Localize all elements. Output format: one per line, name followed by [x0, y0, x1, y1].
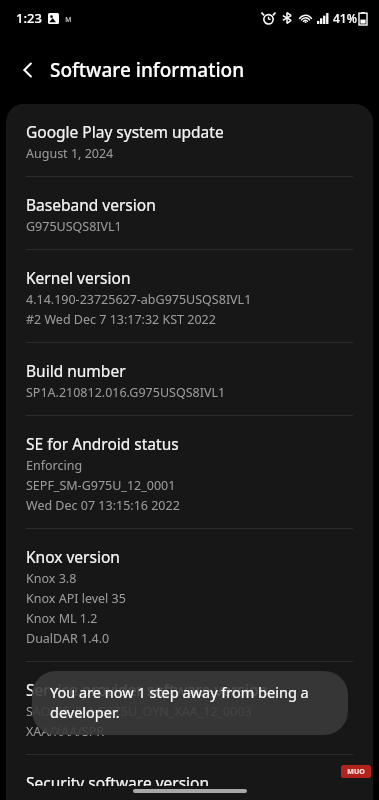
button[interactable]: Service provider software version [6, 662, 373, 755]
staticText: Baseband version [26, 194, 156, 215]
staticText: 4.14.190-23725627-abG975USQS8IVL1 [26, 291, 252, 308]
staticText: MUO [347, 767, 365, 777]
staticText: August 1, 2024 [26, 145, 114, 162]
button[interactable]: Knox version [6, 529, 373, 662]
button[interactable]: SE for Android status [6, 416, 373, 529]
staticText: 41% [333, 10, 357, 26]
staticText: Knox 3.8 [26, 570, 77, 587]
staticText: Wed Dec 07 13:15:16 2022 [26, 497, 180, 514]
staticText: G975USQS8IVL1 [26, 218, 122, 235]
button[interactable]: Back [10, 52, 46, 88]
button[interactable]: Baseband version [6, 177, 373, 250]
staticText: SE for Android status [26, 433, 179, 454]
staticText: Security software version [26, 772, 210, 786]
staticText: Build number [26, 360, 126, 381]
staticText: 1:23 [16, 9, 42, 27]
button[interactable]: Google Play system update [6, 104, 373, 177]
staticText: SAOMC_SM-G975U_OYN_XAA_12_0003 [26, 703, 252, 720]
staticText: Knox ML 1.2 [26, 610, 98, 627]
button[interactable]: Security software version [6, 755, 373, 800]
staticText: SEPF_SM-G975U_12_0001 [26, 477, 176, 494]
staticText: #2 Wed Dec 7 13:17:32 KST 2022 [26, 311, 216, 328]
staticText: You are now 1 step away from being a dev… [50, 682, 330, 722]
staticText: Knox version [26, 546, 120, 567]
staticText: ᴍ [65, 12, 72, 24]
staticText: Enforcing [26, 457, 83, 474]
staticText: DualDAR 1.4.0 [26, 630, 110, 647]
staticText: Service provider software version [26, 679, 268, 700]
staticText: Software information [50, 57, 245, 83]
staticText: SP1A.210812.016.G975USQS8IVL1 [26, 384, 226, 401]
staticText: Knox API level 35 [26, 590, 126, 607]
staticText: Google Play system update [26, 121, 224, 142]
button[interactable]: Kernel version [6, 250, 373, 343]
staticText: XAA/XAA/SPR [26, 723, 105, 740]
button[interactable]: Build number [6, 343, 373, 416]
staticText: Kernel version [26, 267, 131, 288]
